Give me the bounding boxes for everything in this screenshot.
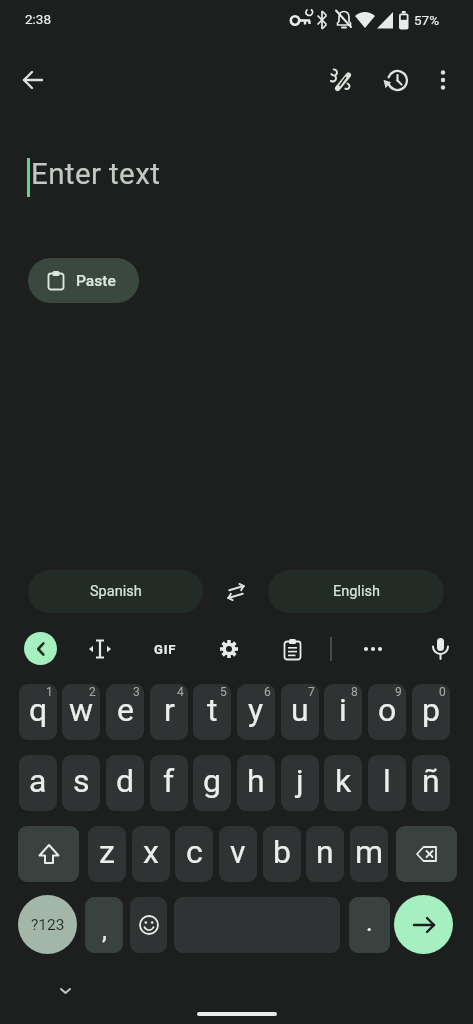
button[interactable] bbox=[18, 826, 79, 882]
button[interactable]: i bbox=[324, 684, 362, 740]
staticText: 7 bbox=[308, 685, 315, 699]
staticText: 9 bbox=[395, 685, 402, 699]
staticText: English bbox=[333, 583, 380, 600]
button[interactable]: ñ bbox=[412, 755, 450, 811]
button[interactable] bbox=[218, 574, 254, 610]
staticText: n bbox=[316, 833, 334, 871]
button[interactable]: Paste bbox=[28, 258, 139, 303]
staticText: g bbox=[203, 762, 221, 800]
button[interactable]: t bbox=[193, 684, 231, 740]
button[interactable] bbox=[353, 629, 393, 669]
button[interactable]: GIF bbox=[145, 629, 185, 669]
button[interactable] bbox=[396, 826, 457, 882]
staticText: h bbox=[247, 762, 265, 800]
button[interactable]: h bbox=[237, 755, 275, 811]
button[interactable] bbox=[130, 897, 167, 953]
button[interactable]: b bbox=[263, 826, 301, 882]
staticText: e bbox=[117, 691, 134, 729]
staticText: 8 bbox=[351, 685, 358, 699]
button[interactable]: c bbox=[175, 826, 213, 882]
staticText: 6 bbox=[264, 685, 271, 699]
button[interactable]: l bbox=[368, 755, 406, 811]
button[interactable] bbox=[51, 980, 79, 1002]
staticText: k bbox=[335, 762, 352, 800]
button[interactable] bbox=[13, 60, 53, 100]
button[interactable]: m bbox=[350, 826, 388, 882]
staticText: f bbox=[163, 762, 175, 800]
staticText: s bbox=[73, 762, 90, 800]
button[interactable]: s bbox=[62, 755, 100, 811]
button[interactable]: d bbox=[106, 755, 144, 811]
staticText: Paste bbox=[76, 272, 116, 290]
staticText: l bbox=[383, 762, 391, 800]
button[interactable]: u bbox=[281, 684, 319, 740]
staticText: o bbox=[378, 691, 397, 729]
staticText: , bbox=[102, 916, 107, 945]
button[interactable]: n bbox=[306, 826, 344, 882]
button[interactable]: g bbox=[193, 755, 231, 811]
staticText: 57% bbox=[414, 12, 440, 28]
staticText: r bbox=[164, 691, 175, 729]
staticText: p bbox=[422, 691, 440, 729]
button[interactable] bbox=[376, 60, 416, 100]
staticText: y bbox=[248, 691, 264, 729]
button[interactable]: o bbox=[368, 684, 406, 740]
button[interactable]: v bbox=[219, 826, 257, 882]
button[interactable]: k bbox=[324, 755, 362, 811]
staticText: a bbox=[29, 762, 47, 800]
button[interactable] bbox=[80, 629, 120, 669]
staticText: ñ bbox=[422, 762, 440, 800]
staticText: d bbox=[116, 762, 135, 800]
staticText: 2:38 bbox=[25, 11, 52, 27]
staticText: j bbox=[296, 762, 304, 800]
staticText: t bbox=[207, 691, 218, 729]
staticText: c bbox=[186, 833, 203, 871]
staticText: . bbox=[366, 908, 373, 937]
staticText: GIF bbox=[154, 642, 177, 657]
button[interactable]: p bbox=[412, 684, 450, 740]
button[interactable]: j bbox=[281, 755, 319, 811]
staticText: 3 bbox=[133, 685, 140, 699]
staticText: 1 bbox=[46, 685, 53, 699]
button[interactable]: z bbox=[88, 826, 126, 882]
staticText: v bbox=[230, 833, 246, 871]
staticText: 0 bbox=[439, 685, 446, 699]
button[interactable]: Spanish bbox=[28, 570, 203, 613]
button[interactable]: , bbox=[85, 897, 123, 953]
staticText: b bbox=[273, 833, 291, 871]
staticText: ?123 bbox=[31, 916, 65, 934]
staticText: w bbox=[69, 691, 94, 729]
button[interactable] bbox=[209, 629, 249, 669]
staticText: x bbox=[143, 833, 159, 871]
staticText: z bbox=[99, 833, 115, 871]
button[interactable]: w bbox=[62, 684, 100, 740]
button[interactable]: r bbox=[150, 684, 188, 740]
staticText: 4 bbox=[177, 685, 184, 699]
button[interactable]: ?123 bbox=[18, 895, 77, 954]
staticText: m bbox=[355, 833, 384, 871]
button[interactable]: e bbox=[106, 684, 144, 740]
staticText: u bbox=[291, 691, 309, 729]
staticText: Spanish bbox=[90, 583, 142, 600]
button[interactable]: . bbox=[349, 897, 390, 953]
button[interactable]: q bbox=[19, 684, 57, 740]
button[interactable] bbox=[423, 60, 463, 100]
staticText: 2 bbox=[89, 685, 96, 699]
button[interactable] bbox=[394, 895, 453, 954]
button[interactable] bbox=[272, 629, 312, 669]
button[interactable]: y bbox=[237, 684, 275, 740]
button[interactable]: x bbox=[132, 826, 170, 882]
staticText: Enter text bbox=[31, 157, 161, 192]
button[interactable] bbox=[420, 629, 460, 669]
staticText: 5 bbox=[220, 685, 227, 699]
staticText: q bbox=[29, 691, 48, 729]
button[interactable] bbox=[24, 632, 57, 665]
staticText: i bbox=[339, 691, 347, 729]
button[interactable]: a bbox=[19, 755, 57, 811]
button[interactable] bbox=[320, 60, 360, 100]
button[interactable]: f bbox=[150, 755, 188, 811]
button[interactable]: English bbox=[268, 570, 444, 613]
